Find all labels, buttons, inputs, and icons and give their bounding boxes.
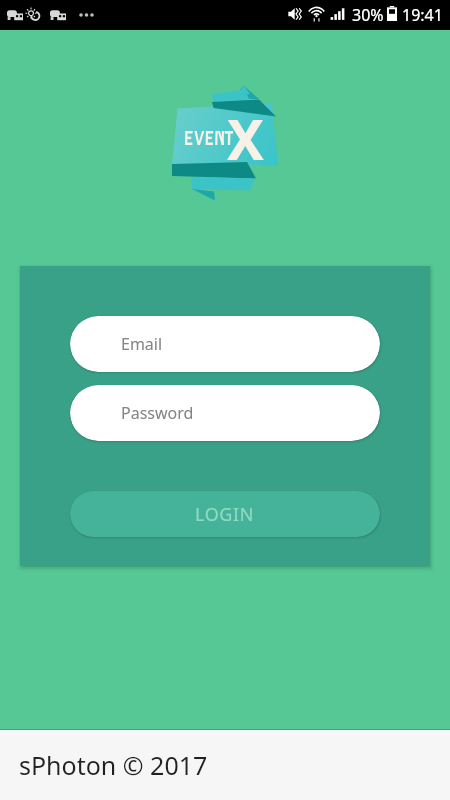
staticText: sPhoton © 2017 bbox=[19, 748, 208, 782]
button[interactable]: Password bbox=[70, 385, 380, 441]
other: EventX logo bbox=[169, 83, 289, 203]
staticText: 30% bbox=[352, 4, 384, 26]
button[interactable]: LOGIN bbox=[70, 491, 380, 537]
staticText: 19:41 bbox=[402, 4, 443, 26]
staticText: LOGIN bbox=[195, 502, 255, 527]
staticText: Password bbox=[121, 402, 194, 424]
button[interactable]: Email bbox=[70, 316, 380, 372]
staticText: X bbox=[227, 101, 264, 176]
staticText: Email bbox=[121, 333, 163, 355]
